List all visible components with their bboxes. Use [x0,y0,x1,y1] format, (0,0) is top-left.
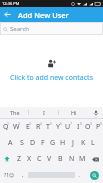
staticText: I [77,122,80,132]
staticText: T [46,122,50,132]
staticText: K [81,138,86,148]
button[interactable]: F [38,135,48,151]
staticText: 9 [90,121,93,126]
staticText: V [47,154,52,164]
staticText: 7 [70,121,73,126]
staticText: 0 [100,121,103,126]
button[interactable]: V [44,151,55,167]
button[interactable]: R [33,119,43,135]
button[interactable]: Z [14,151,24,167]
button[interactable]: A [5,135,16,151]
staticText: Q [3,122,9,132]
staticText: G [50,138,56,148]
staticText: Z [17,154,22,164]
staticText: , [22,171,24,179]
staticText: Hi [71,109,77,116]
button[interactable]: I [73,119,83,135]
staticText: L [91,138,95,148]
staticText: 1 [7,121,10,126]
staticText: 2 [18,121,21,126]
staticText: 8 [80,121,83,126]
button[interactable]: Click to add new contacts [10,73,93,83]
button[interactable]: X [24,151,34,167]
button[interactable]: L [88,135,98,151]
button[interactable]: Back [0,7,15,22]
staticText: A [8,138,13,148]
button[interactable]: W [11,119,22,135]
staticText: X [27,154,32,164]
button[interactable]: Search [90,171,99,180]
button[interactable]: I [29,107,59,118]
staticText: E [26,122,30,132]
staticText: O [85,122,91,132]
staticText: F [41,138,45,148]
button[interactable]: U [63,119,73,135]
button[interactable]: S [16,135,27,151]
button[interactable]: G [48,135,58,151]
staticText: 5 [50,121,53,126]
button[interactable]: N [66,151,77,167]
staticText: J [72,138,74,148]
button[interactable]: The [0,107,29,118]
staticText: R [36,122,41,132]
button[interactable]: K [78,135,88,151]
button[interactable]: T [43,119,53,135]
staticText: D [30,138,36,148]
staticText: M [79,154,86,164]
staticText: 12:36 PM [2,1,20,6]
staticText: C [37,154,42,164]
staticText: 4 [40,121,43,126]
staticText: B [58,154,63,164]
staticText: Y [56,122,60,132]
button[interactable]: Hi [59,107,89,118]
staticText: . [79,171,81,179]
button[interactable]: Q [0,119,11,135]
button[interactable]: E [22,119,33,135]
staticText: 6 [60,121,63,126]
button[interactable]: ?1☺ [0,167,18,183]
button[interactable]: Voice input [89,107,103,118]
button[interactable]: . [75,167,85,183]
staticText: Search [10,25,29,33]
button[interactable]: , [18,167,28,183]
button[interactable]: Y [53,119,63,135]
staticText: Add New User [18,10,69,20]
button[interactable]: J [68,135,78,151]
button[interactable]: P [93,119,103,135]
button[interactable]: B [55,151,66,167]
button[interactable]: M [77,151,88,167]
button[interactable]: H [58,135,68,151]
staticText: 3 [29,121,32,126]
staticText: U [65,122,71,132]
staticText: The [10,109,20,116]
staticText: P [96,122,101,132]
staticText: H [60,138,66,148]
button[interactable]: Shift [0,151,14,167]
button[interactable]: Search [0,22,103,35]
button[interactable]: D [27,135,38,151]
staticText: ?1☺ [4,172,15,179]
staticText: S [20,138,24,148]
staticText: N [69,154,75,164]
staticText: I [43,109,45,116]
button[interactable]: C [34,151,44,167]
staticText: W [13,122,20,132]
button[interactable]: Backspace [88,151,103,167]
button[interactable]: O [83,119,93,135]
